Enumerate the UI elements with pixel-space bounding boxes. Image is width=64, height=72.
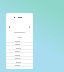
button[interactable] <box>6 47 33 51</box>
button[interactable]: Edit profile <box>29 26 30 28</box>
button[interactable] <box>6 57 33 61</box>
button[interactable] <box>6 50 33 54</box>
button[interactable] <box>6 61 33 65</box>
button[interactable]: Avatar <box>9 26 10 28</box>
button[interactable] <box>6 43 33 47</box>
button[interactable] <box>6 40 33 44</box>
button[interactable] <box>6 64 33 68</box>
button[interactable] <box>6 54 33 58</box>
